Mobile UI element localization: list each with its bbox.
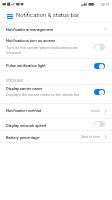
staticText: 23:17	[101, 3, 110, 7]
button[interactable]: Display network speed	[0, 119, 112, 130]
button[interactable]: Display carrier name	[94, 89, 105, 95]
staticText: STATUS BAR	[6, 79, 23, 82]
button[interactable]: Notification method	[0, 104, 112, 118]
button[interactable]: Navigate up	[5, 12, 14, 21]
button[interactable]: Notifications turn on screen	[0, 36, 112, 58]
staticText: Notifications management	[6, 27, 54, 32]
staticText: Pulse notification light	[6, 63, 46, 68]
button[interactable]: Notifications management	[0, 23, 112, 35]
staticText: Display carrier name	[6, 86, 43, 91]
button[interactable]: Display carrier name	[0, 85, 112, 103]
staticText: Icons	[91, 109, 100, 113]
button[interactable]: Pulse notification light	[0, 59, 112, 70]
button[interactable]: Pulse notification light	[94, 63, 105, 69]
staticText: Display network speed	[6, 123, 47, 128]
staticText: Battery percentage	[6, 135, 40, 140]
staticText: Turn on the screen when notifications ar…	[6, 45, 80, 55]
staticText: Notification method	[6, 108, 42, 113]
staticText: Notification & status bar	[16, 12, 79, 19]
button[interactable]: Notifications turn on screen	[94, 44, 105, 50]
button[interactable]: Battery percentage	[0, 131, 112, 142]
button[interactable]: Display network speed	[94, 121, 105, 127]
staticText: Notifications turn on screen	[6, 38, 56, 43]
staticText: Displays the carrier name in the status …	[6, 92, 80, 97]
staticText: Next to icon	[81, 135, 100, 139]
